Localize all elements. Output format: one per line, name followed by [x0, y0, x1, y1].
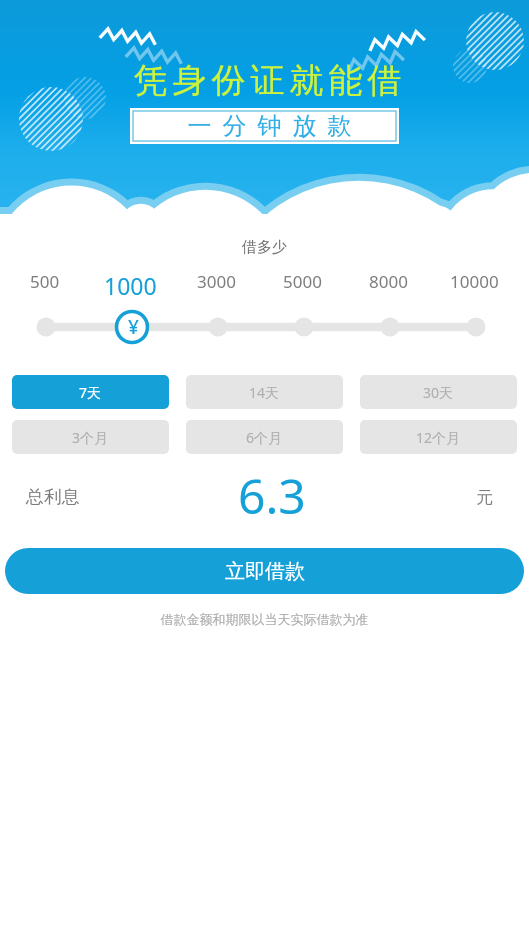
staticText: 一分钟放款 — [182, 111, 357, 141]
staticText: ¥ — [128, 314, 139, 340]
staticText: 借多少 — [0, 238, 529, 257]
staticText: 1000 — [104, 270, 157, 298]
staticText: 3个月 — [72, 428, 109, 447]
staticText: 3000 — [197, 270, 236, 293]
staticText: 8000 — [369, 270, 408, 293]
staticText: 借款金额和期限以当天实际借款为准 — [0, 611, 529, 627]
staticText: 500 — [30, 270, 60, 293]
staticText: 5000 — [283, 270, 322, 293]
button[interactable]: 3个月 — [12, 420, 169, 454]
staticText: 7天 — [79, 383, 102, 402]
staticText: 30天 — [423, 383, 454, 402]
staticText: 12个月 — [416, 428, 461, 447]
staticText: 立即借款 — [225, 559, 305, 584]
staticText: 14天 — [249, 383, 280, 402]
button[interactable]: 6个月 — [186, 420, 343, 454]
button[interactable]: 14天 — [186, 375, 343, 409]
staticText: 凭身份证就能借 — [131, 59, 404, 102]
staticText: 总利息 — [26, 486, 80, 509]
button[interactable]: 7天 — [12, 375, 169, 409]
staticText: 元 — [476, 487, 493, 508]
staticText: 10000 — [450, 270, 499, 293]
button[interactable]: 立即借款 — [5, 548, 524, 594]
staticText: 6个月 — [246, 428, 283, 447]
button[interactable]: 30天 — [360, 375, 517, 409]
button[interactable]: 12个月 — [360, 420, 517, 454]
staticText: 6.3 — [238, 463, 306, 515]
